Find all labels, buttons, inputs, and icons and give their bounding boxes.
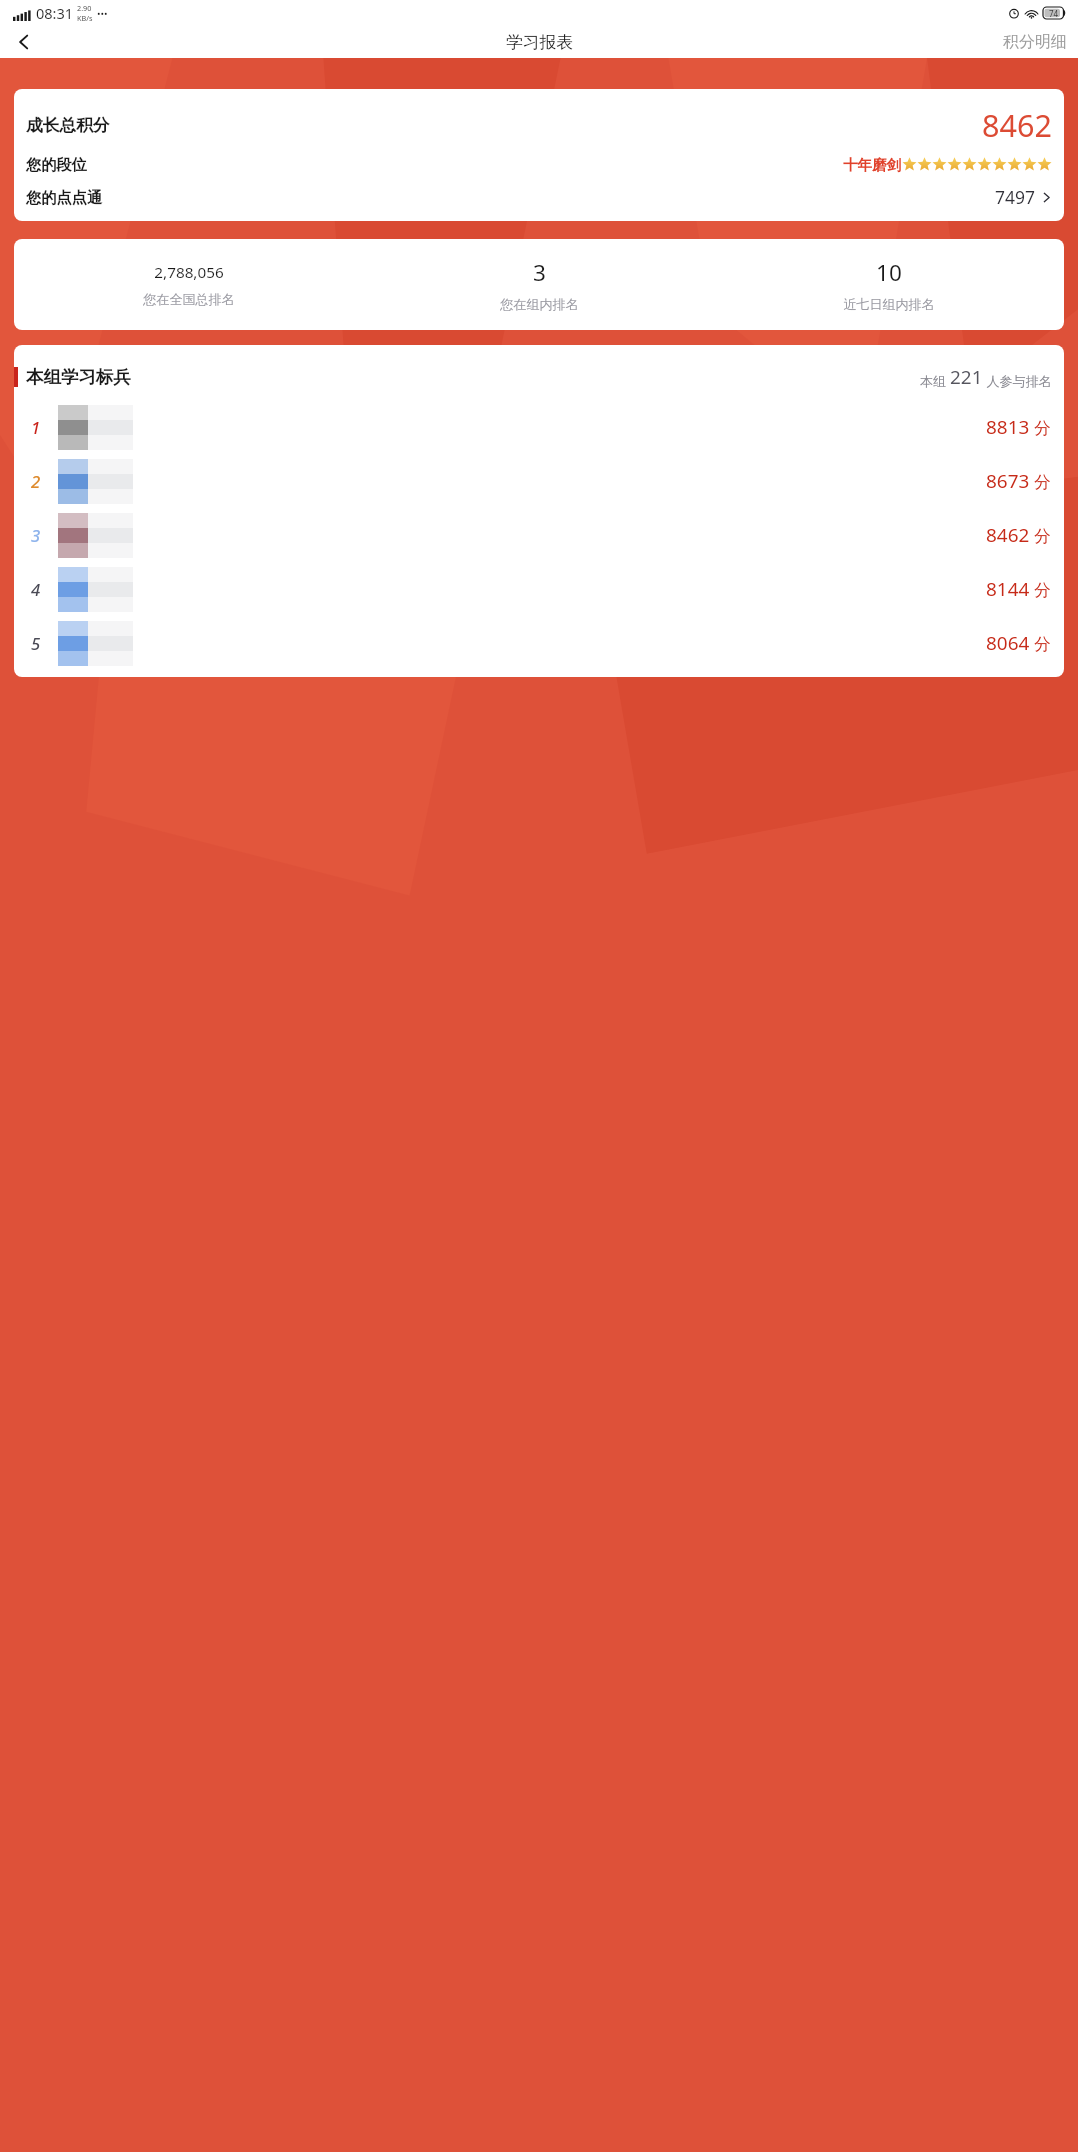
- staticText: 8462: [986, 522, 1030, 548]
- staticText: 7497: [995, 185, 1035, 209]
- staticText: 十年磨剑: [843, 156, 902, 174]
- staticText: 分: [1030, 578, 1052, 601]
- button[interactable]: 3: [14, 508, 1064, 562]
- staticText: 2: [31, 470, 41, 493]
- staticText: 学习报表: [506, 32, 573, 53]
- staticText: 4: [31, 578, 41, 601]
- staticText: 分: [1030, 416, 1052, 439]
- staticText: 2.90: [77, 3, 92, 13]
- button[interactable]: 1: [14, 400, 1064, 454]
- button[interactable]: 2: [14, 454, 1064, 508]
- staticText: 分: [1030, 470, 1052, 493]
- button[interactable]: Back: [7, 26, 40, 58]
- staticText: 1: [31, 416, 41, 439]
- staticText: 8064: [986, 630, 1030, 656]
- staticText: 2,788,056: [154, 262, 224, 283]
- staticText: 您在组内排名: [500, 296, 579, 312]
- staticText: 74: [1049, 8, 1059, 19]
- staticText: 8144: [986, 576, 1030, 602]
- button[interactable]: 积分明细: [1001, 28, 1069, 56]
- staticText: 8673: [986, 468, 1030, 494]
- staticText: 3: [533, 257, 546, 288]
- button[interactable]: 成长总积分: [14, 89, 1064, 221]
- staticText: 本组: [920, 372, 950, 390]
- staticText: KB/s: [77, 13, 93, 23]
- staticText: 近七日组内排名: [843, 296, 935, 312]
- staticText: 本组学习标兵: [26, 366, 131, 388]
- staticText: 5: [31, 632, 41, 655]
- staticText: 分: [1030, 632, 1052, 655]
- button[interactable]: 4: [14, 562, 1064, 616]
- staticText: 分: [1030, 524, 1052, 547]
- staticText: 8813: [986, 414, 1030, 440]
- staticText: 积分明细: [1003, 32, 1067, 52]
- button[interactable]: 10: [714, 253, 1064, 316]
- staticText: 您的点点通: [26, 188, 103, 207]
- staticText: 08:31: [36, 3, 74, 23]
- staticText: 221: [950, 364, 983, 390]
- button[interactable]: 2,788,056: [14, 258, 364, 311]
- staticText: 10: [876, 257, 902, 288]
- staticText: 您在全国总排名: [143, 291, 235, 307]
- staticText: 8462: [982, 104, 1052, 146]
- staticText: 成长总积分: [26, 115, 110, 136]
- staticText: •••: [97, 7, 108, 20]
- staticText: 人参与排名: [983, 372, 1052, 390]
- staticText: 您的段位: [26, 155, 88, 174]
- staticText: 3: [31, 524, 41, 547]
- button[interactable]: 5: [14, 616, 1064, 670]
- button[interactable]: 3: [364, 253, 714, 316]
